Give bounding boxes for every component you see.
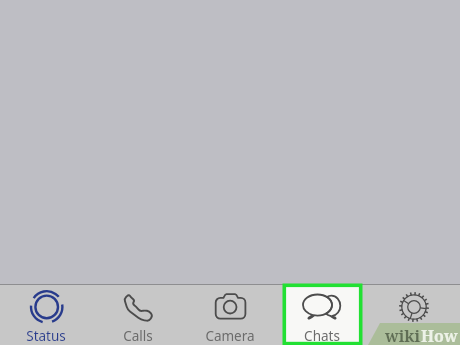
button[interactable]: Calls <box>92 284 184 345</box>
button[interactable]: Chats <box>276 284 368 345</box>
button[interactable]: Camera <box>184 284 276 345</box>
staticText: Chats <box>276 327 368 345</box>
button[interactable]: Settings <box>368 284 460 345</box>
staticText: wiki <box>385 325 421 345</box>
staticText: Camera <box>184 327 276 345</box>
staticText: Calls <box>92 327 184 345</box>
button[interactable]: Status <box>0 284 92 345</box>
staticText: Status <box>0 327 92 345</box>
staticText: How <box>421 325 458 345</box>
